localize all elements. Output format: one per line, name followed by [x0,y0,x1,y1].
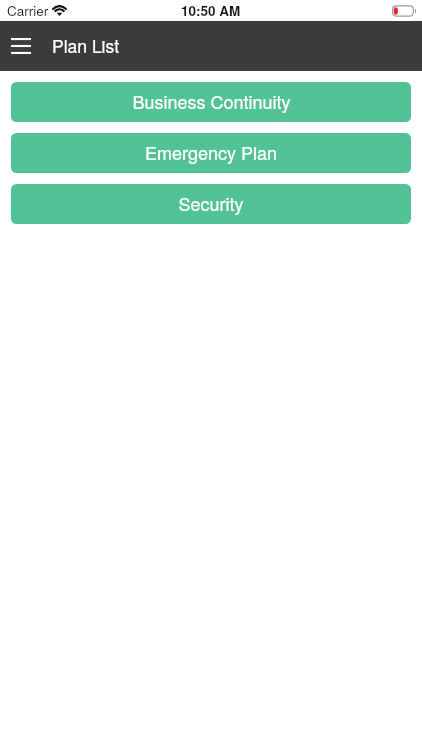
button[interactable]: Security [11,184,411,224]
staticText: Business Continuity [132,88,291,114]
button[interactable]: Open navigation menu [1,26,41,66]
staticText: Carrier [7,1,49,20]
staticText: Security [178,190,244,216]
staticText: 10:50 AM [181,1,241,20]
staticText: Plan List [52,33,120,58]
button[interactable]: Emergency Plan [11,133,411,173]
staticText: Emergency Plan [145,139,277,165]
button[interactable]: Business Continuity [11,82,411,122]
